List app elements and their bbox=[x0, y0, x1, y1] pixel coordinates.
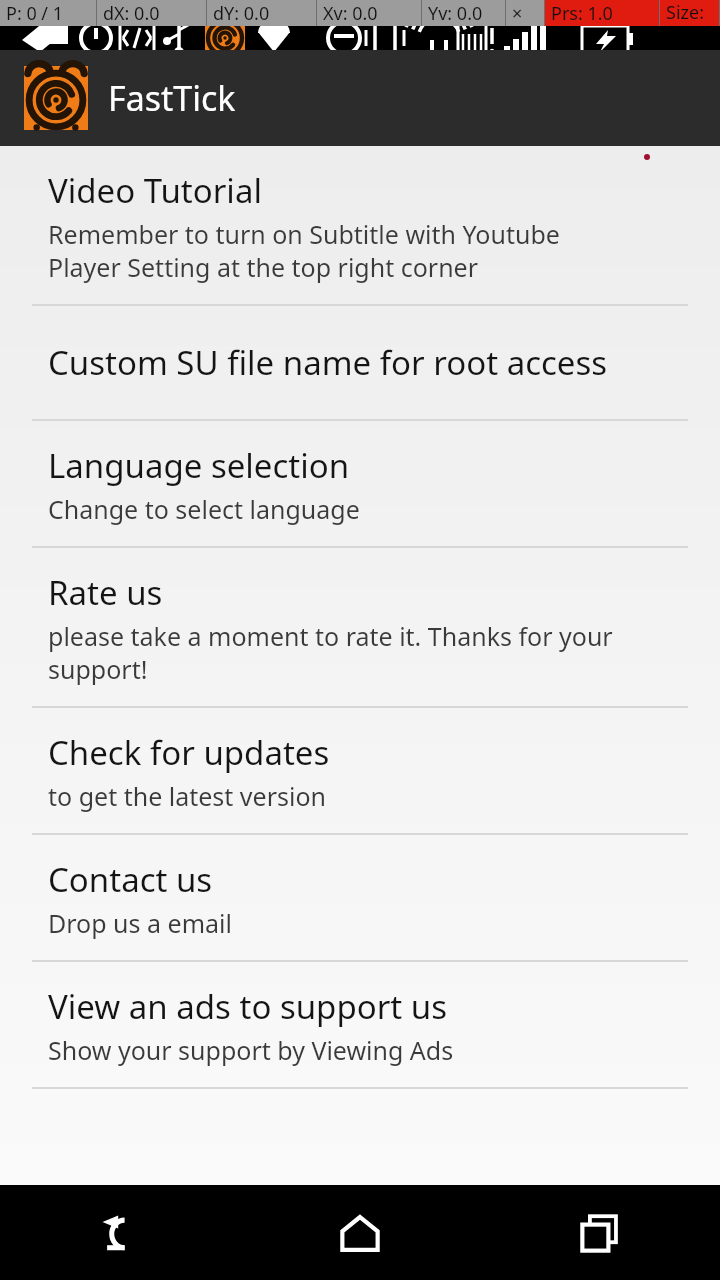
staticText: Video Tutorial bbox=[48, 168, 262, 213]
button[interactable]: Contact us bbox=[0, 835, 720, 962]
staticText: Drop us a email bbox=[48, 906, 232, 940]
staticText: View an ads to support us bbox=[48, 984, 448, 1029]
staticText: P: 0 / 1 bbox=[6, 1, 64, 26]
button[interactable]: Back bbox=[72, 1185, 168, 1280]
staticText: Language selection bbox=[48, 443, 350, 488]
staticText: Contact us bbox=[48, 857, 213, 902]
staticText: dY: 0.0 bbox=[213, 1, 270, 26]
staticText: FastTick bbox=[108, 75, 236, 121]
staticText: Prs: 1.0 bbox=[551, 1, 613, 26]
staticText: Rate us bbox=[48, 570, 163, 615]
staticText: Size: 1.0 bbox=[666, 0, 720, 26]
staticText: Yv: 0.0 bbox=[428, 1, 483, 26]
staticText: Xv: 0.0 bbox=[323, 1, 378, 26]
staticText: please take a moment to rate it. Thanks … bbox=[48, 619, 613, 686]
button[interactable]: Rate us bbox=[0, 548, 720, 708]
button[interactable]: Custom SU file name for root access bbox=[0, 306, 720, 421]
staticText: Change to select language bbox=[48, 492, 360, 526]
staticText: × bbox=[512, 1, 523, 26]
staticText: Custom SU file name for root access bbox=[48, 340, 608, 385]
button[interactable]: Recent apps bbox=[552, 1185, 648, 1280]
staticText: Remember to turn on Subtitle with Youtub… bbox=[48, 217, 560, 284]
staticText: Check for updates bbox=[48, 730, 330, 775]
button[interactable]: View an ads to support us bbox=[0, 962, 720, 1089]
button[interactable]: Language selection bbox=[0, 421, 720, 548]
staticText: to get the latest version bbox=[48, 779, 326, 813]
button[interactable]: Video Tutorial bbox=[0, 146, 720, 306]
staticText: dX: 0.0 bbox=[103, 1, 160, 26]
button[interactable]: Check for updates bbox=[0, 708, 720, 835]
button[interactable]: Home bbox=[312, 1185, 408, 1280]
staticText: Show your support by Viewing Ads bbox=[48, 1033, 454, 1067]
